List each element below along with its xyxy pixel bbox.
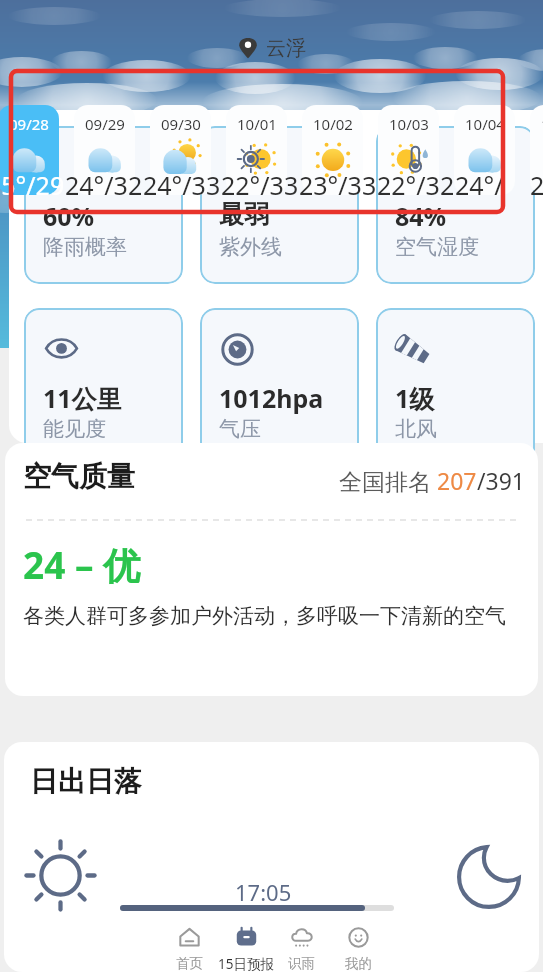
staticText: 识雨 xyxy=(288,955,315,972)
staticText: 09/30 xyxy=(161,114,201,134)
staticText: 全国排名 xyxy=(339,465,437,496)
staticText: 10/03 xyxy=(389,114,429,134)
staticText: 24°/33 xyxy=(143,168,221,202)
button[interactable]: 识雨 xyxy=(273,919,329,972)
button[interactable]: 最弱 xyxy=(200,126,359,284)
staticText: 10/05 xyxy=(541,114,543,134)
staticText: 10/04 xyxy=(465,114,505,134)
button[interactable]: 我的 xyxy=(330,919,386,972)
staticText: 11公里 xyxy=(43,381,122,415)
other: Sunset xyxy=(457,845,521,909)
button[interactable]: 10/05 xyxy=(530,105,543,195)
button[interactable]: 首页 xyxy=(161,919,217,972)
staticText: 09/29 xyxy=(85,114,125,134)
button[interactable]: 11公里 xyxy=(24,308,183,466)
staticText: 22°/33 xyxy=(221,168,299,202)
staticText: 降雨概率 xyxy=(43,234,127,260)
staticText: 24 – 优 xyxy=(23,539,141,590)
staticText: 24°/31 xyxy=(455,168,530,202)
button[interactable]: 09/30 xyxy=(150,105,211,195)
button[interactable]: 10/01 xyxy=(226,105,287,195)
other: Sunrise xyxy=(25,840,96,911)
staticText: 10/01 xyxy=(237,114,277,134)
staticText: 能见度 xyxy=(43,416,106,442)
staticText: 23°/33 xyxy=(299,168,377,202)
button[interactable]: 10/02 xyxy=(302,105,363,195)
staticText: 1012hpa xyxy=(219,381,324,415)
staticText: 09/28 xyxy=(9,114,49,134)
staticText: 日出日落 xyxy=(30,764,142,799)
button[interactable]: 60% xyxy=(24,126,183,284)
staticText: 气压 xyxy=(219,416,261,442)
button[interactable]: 09/29 xyxy=(74,105,135,195)
staticText: 207 xyxy=(437,465,477,496)
button[interactable]: 空气质量 xyxy=(5,443,538,696)
button[interactable]: 10/04 xyxy=(454,105,515,195)
staticText: 北风 xyxy=(395,416,437,442)
button[interactable]: 09/28 xyxy=(0,105,59,195)
staticText: 10/02 xyxy=(313,114,353,134)
staticText: 15日预报 xyxy=(218,955,274,972)
staticText: 空气湿度 xyxy=(395,234,479,260)
staticText: 84% xyxy=(395,199,447,233)
staticText: 1级 xyxy=(395,381,435,415)
button[interactable]: 1级 xyxy=(376,308,535,466)
button[interactable]: 1012hpa xyxy=(200,308,359,466)
staticText: /391 xyxy=(477,465,526,496)
staticText: 17:05 xyxy=(235,877,292,907)
staticText: 空气质量 xyxy=(23,459,135,494)
staticText: 首页 xyxy=(176,955,203,972)
staticText: 24°/32 xyxy=(65,168,143,202)
staticText: 紫外线 xyxy=(219,234,282,260)
staticText: 我的 xyxy=(345,955,372,972)
staticText: 最弱 xyxy=(219,199,269,230)
button[interactable]: 10/03 xyxy=(378,105,439,195)
button[interactable]: 84% xyxy=(376,126,535,284)
staticText: 60% xyxy=(43,199,95,233)
staticText: 云浮 xyxy=(266,36,306,61)
staticText: 25°/29 xyxy=(0,168,65,202)
staticText: 22°/32 xyxy=(377,168,455,202)
button[interactable]: 云浮 xyxy=(0,26,543,70)
staticText: 各类人群可多参加户外活动，多呼吸一下清新的空气 xyxy=(23,603,506,629)
button[interactable]: 15日预报 xyxy=(218,919,274,972)
